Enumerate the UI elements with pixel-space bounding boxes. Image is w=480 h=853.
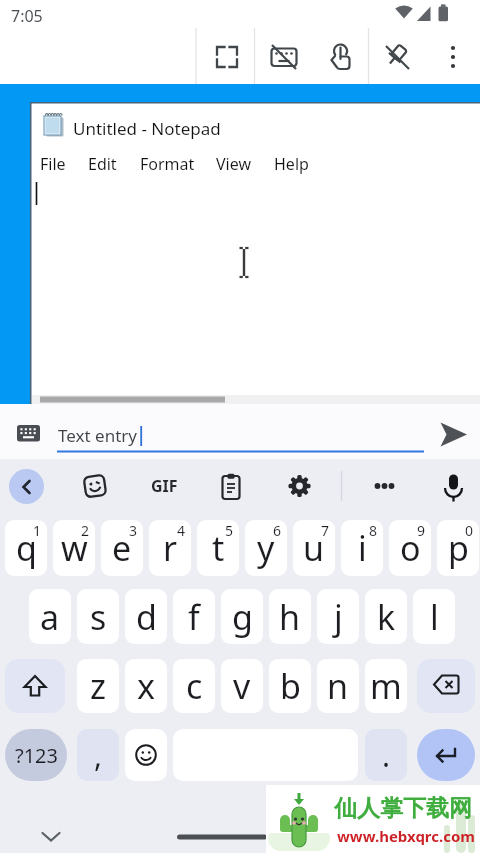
button[interactable] xyxy=(0,28,480,84)
button[interactable] xyxy=(338,470,346,502)
button[interactable] xyxy=(392,2,452,26)
button[interactable] xyxy=(326,43,354,71)
staticText: 3 xyxy=(129,521,138,540)
button[interactable]: . xyxy=(365,729,407,781)
staticText: i xyxy=(358,525,367,571)
button[interactable] xyxy=(40,830,62,844)
button[interactable] xyxy=(287,473,312,499)
button[interactable] xyxy=(17,425,41,443)
button[interactable]: u xyxy=(293,520,335,576)
staticText: h xyxy=(279,594,301,640)
staticText: ?123 xyxy=(15,742,58,769)
staticText: z xyxy=(90,663,106,709)
staticText: 6 xyxy=(273,521,282,540)
button[interactable]: h xyxy=(269,589,311,644)
button[interactable] xyxy=(50,410,430,454)
button[interactable] xyxy=(219,473,244,500)
button[interactable] xyxy=(417,659,475,713)
button[interactable]: k xyxy=(365,589,407,644)
staticText: g xyxy=(232,594,253,640)
button[interactable]: o xyxy=(389,520,431,576)
button[interactable] xyxy=(140,426,144,446)
staticText: 4 xyxy=(177,521,186,540)
staticText: k xyxy=(377,594,396,640)
staticText: l xyxy=(430,594,439,640)
button[interactable]: ?123 xyxy=(5,729,67,781)
staticText: . xyxy=(382,735,391,776)
staticText: 7:05 xyxy=(11,5,43,27)
button[interactable] xyxy=(441,471,466,503)
staticText: File xyxy=(40,153,66,175)
button[interactable] xyxy=(0,450,480,454)
staticText: 0 xyxy=(465,521,474,540)
staticText: 1 xyxy=(33,521,42,540)
button[interactable]: , xyxy=(77,729,119,781)
button[interactable]: m xyxy=(365,659,407,713)
button[interactable]: w xyxy=(53,520,95,576)
staticText: View xyxy=(216,153,252,175)
button[interactable] xyxy=(9,469,44,504)
button[interactable]: i xyxy=(341,520,383,576)
button[interactable]: d xyxy=(125,589,167,644)
button[interactable]: f xyxy=(173,589,215,644)
button[interactable]: x xyxy=(125,659,167,713)
staticText: 9 xyxy=(417,521,426,540)
staticText: q xyxy=(16,525,37,571)
staticText: v xyxy=(233,663,251,709)
button[interactable] xyxy=(5,659,65,713)
staticText: 5 xyxy=(225,521,234,540)
staticText: m xyxy=(370,663,402,709)
button[interactable] xyxy=(368,478,401,494)
button[interactable]: r xyxy=(149,520,191,576)
staticText: Help xyxy=(274,153,309,175)
staticText: www.hebxqrc.com xyxy=(337,826,475,846)
staticText: e xyxy=(112,525,132,571)
staticText: n xyxy=(327,663,349,709)
staticText: Text entry xyxy=(58,424,137,447)
staticText: u xyxy=(303,525,325,571)
button[interactable] xyxy=(125,729,167,781)
button[interactable]: b xyxy=(269,659,311,713)
button[interactable] xyxy=(215,45,239,69)
button[interactable]: c xyxy=(173,659,215,713)
button[interactable]: p xyxy=(437,520,479,576)
button[interactable]: z xyxy=(77,659,119,713)
staticText: a xyxy=(40,594,60,640)
staticText: x xyxy=(137,663,155,709)
staticText: s xyxy=(90,594,107,640)
button[interactable] xyxy=(383,43,411,71)
button[interactable]: j xyxy=(317,589,359,644)
staticText: c xyxy=(186,663,203,709)
button[interactable]: a xyxy=(29,589,71,644)
button[interactable]: q xyxy=(5,520,47,576)
staticText: j xyxy=(334,594,343,640)
button[interactable]: v xyxy=(221,659,263,713)
button[interactable] xyxy=(417,729,475,781)
staticText: y xyxy=(257,525,275,571)
button[interactable] xyxy=(268,789,330,851)
staticText: f xyxy=(188,594,200,640)
button[interactable] xyxy=(438,421,470,448)
button[interactable]: y xyxy=(245,520,287,576)
button[interactable] xyxy=(270,43,298,71)
button[interactable]: t xyxy=(197,520,239,576)
staticText: Edit xyxy=(88,153,117,175)
button[interactable]: GIF xyxy=(146,470,182,502)
button[interactable] xyxy=(83,474,108,499)
button[interactable] xyxy=(175,833,270,841)
button[interactable] xyxy=(445,43,461,71)
staticText: r xyxy=(163,525,178,571)
staticText: w xyxy=(61,525,88,571)
staticText: b xyxy=(280,663,301,709)
staticText: 8 xyxy=(369,521,378,540)
button[interactable]: n xyxy=(317,659,359,713)
button[interactable]: l xyxy=(413,589,455,644)
staticText: o xyxy=(400,525,421,571)
staticText: 7 xyxy=(321,521,330,540)
button[interactable]: s xyxy=(77,589,119,644)
staticText: Untitled - Notepad xyxy=(73,117,221,140)
button[interactable]: g xyxy=(221,589,263,644)
button[interactable]: e xyxy=(101,520,143,576)
staticText: t xyxy=(212,525,225,571)
